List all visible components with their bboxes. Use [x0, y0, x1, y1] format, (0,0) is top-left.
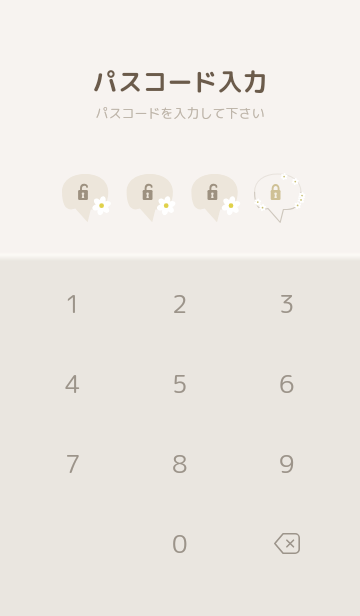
staticText: パスコード入力	[0, 64, 360, 99]
staticText: 6	[279, 366, 295, 401]
other: Backspace	[274, 533, 300, 554]
staticText: 3	[279, 286, 295, 321]
staticText: 5	[172, 366, 188, 401]
button[interactable]: 4	[20, 343, 126, 423]
button[interactable]: 6	[233, 343, 340, 423]
button[interactable]: Backspace	[233, 503, 340, 583]
button[interactable]: 1	[20, 263, 126, 343]
staticText: 0	[172, 526, 188, 561]
staticText: 2	[172, 286, 188, 321]
staticText: 4	[65, 366, 81, 401]
button[interactable]: 0	[126, 503, 233, 583]
staticText: 8	[172, 446, 188, 481]
button[interactable]: 3	[233, 263, 340, 343]
staticText: 9	[279, 446, 295, 481]
button[interactable]: 5	[126, 343, 233, 423]
button[interactable]: 8	[126, 423, 233, 503]
staticText: 7	[65, 446, 81, 481]
staticText: 1	[65, 286, 81, 321]
button[interactable]: 2	[126, 263, 233, 343]
button[interactable]: 7	[20, 423, 126, 503]
button[interactable]: 9	[233, 423, 340, 503]
staticText: パスコードを入力して下さい	[0, 104, 360, 122]
